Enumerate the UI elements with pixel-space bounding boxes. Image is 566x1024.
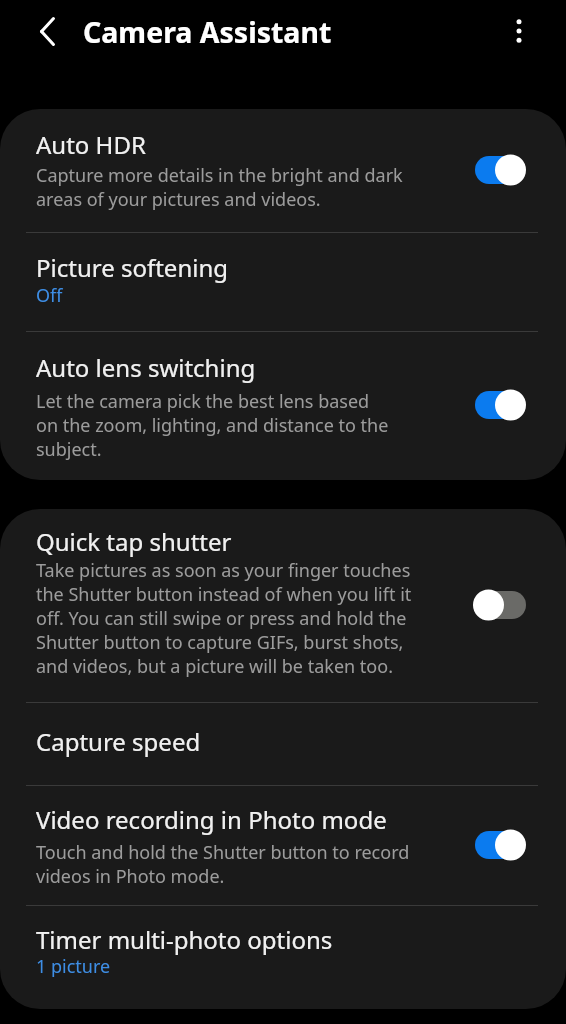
button[interactable]: Switch on bbox=[466, 383, 530, 427]
staticText: Capture speed bbox=[36, 725, 201, 758]
button[interactable]: Quick tap shutter bbox=[0, 509, 566, 702]
button[interactable]: More options bbox=[497, 9, 541, 53]
staticText: Capture more details in the bright and d… bbox=[36, 163, 416, 211]
staticText: 1 picture bbox=[36, 954, 111, 979]
staticText: Touch and hold the Shutter button to rec… bbox=[36, 840, 421, 888]
staticText: Picture softening bbox=[36, 251, 229, 284]
button[interactable]: Auto HDR bbox=[0, 109, 566, 232]
button[interactable]: Picture softening bbox=[0, 233, 566, 331]
staticText: Let the camera pick the best lens based … bbox=[36, 389, 392, 461]
staticText: Camera Assistant bbox=[83, 13, 332, 52]
button[interactable]: Switch on bbox=[466, 148, 530, 192]
button[interactable]: Timer multi-photo options bbox=[0, 906, 566, 1009]
button[interactable]: Navigate up bbox=[25, 9, 69, 53]
staticText: Quick tap shutter bbox=[36, 525, 232, 558]
staticText: Take pictures as soon as your finger tou… bbox=[36, 558, 428, 678]
staticText: Video recording in Photo mode bbox=[36, 803, 387, 836]
staticText: Timer multi-photo options bbox=[36, 923, 333, 956]
button[interactable]: Switch on bbox=[466, 823, 530, 867]
button[interactable]: Capture speed bbox=[0, 703, 566, 785]
button[interactable]: Auto lens switching bbox=[0, 332, 566, 480]
button[interactable]: Video recording in Photo mode bbox=[0, 786, 566, 905]
staticText: Off bbox=[36, 283, 63, 308]
button[interactable]: Switch off bbox=[466, 583, 530, 627]
staticText: Auto HDR bbox=[36, 128, 146, 161]
staticText: Auto lens switching bbox=[36, 351, 256, 384]
